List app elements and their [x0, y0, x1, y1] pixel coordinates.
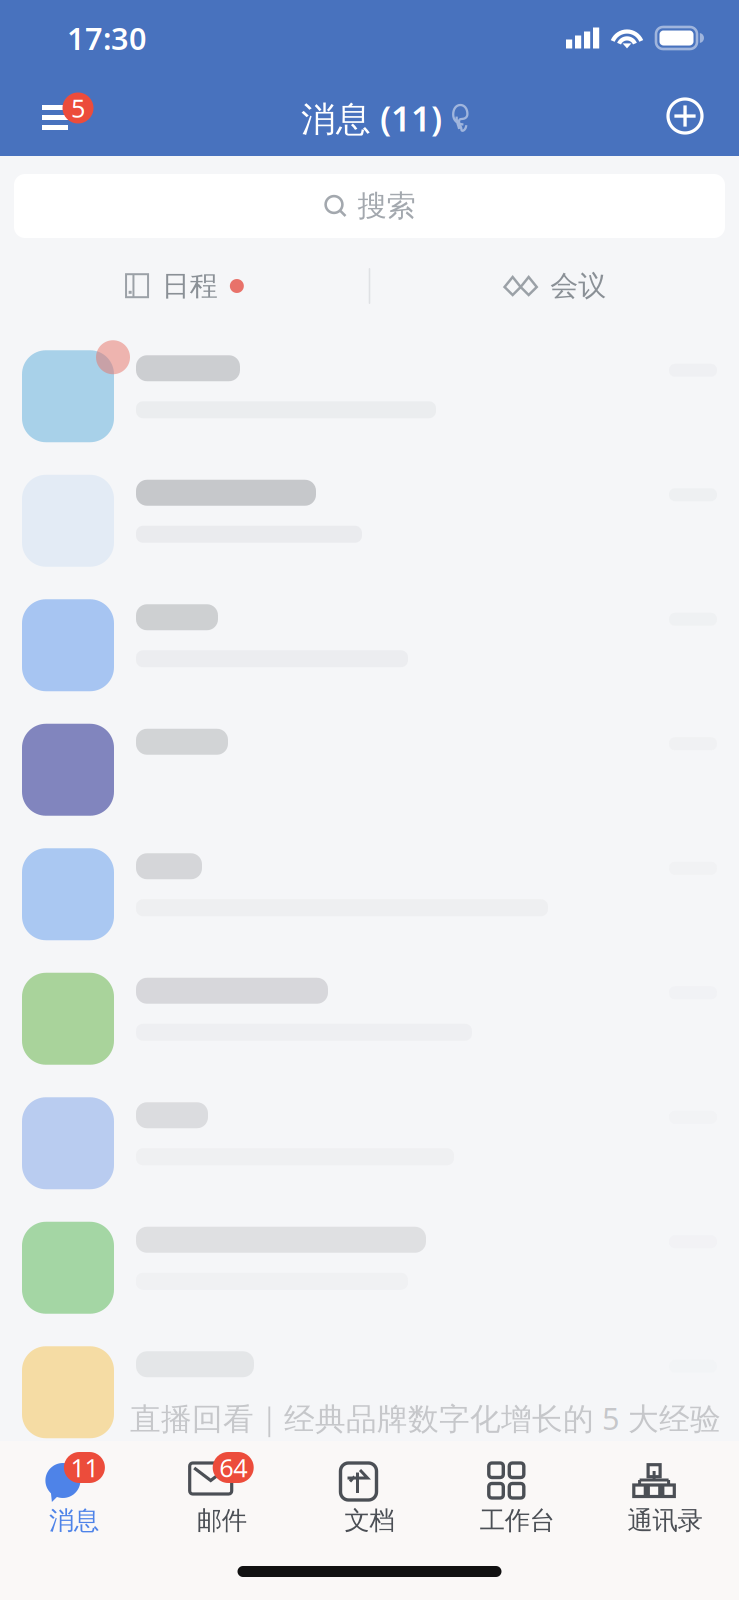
button[interactable] [0, 707, 739, 832]
button[interactable]: 日程 [0, 238, 369, 334]
button[interactable] [0, 1330, 739, 1454]
staticText: 工作台 [480, 1505, 555, 1536]
staticText: 消息 (11) [301, 95, 442, 141]
button[interactable]: 通讯录 [591, 1441, 739, 1542]
staticText: 64 [219, 1451, 247, 1484]
button[interactable] [0, 583, 739, 707]
staticText: 消息 [49, 1505, 99, 1536]
button[interactable]: 64 [148, 1441, 296, 1542]
button[interactable] [0, 334, 739, 458]
staticText: 搜索 [357, 188, 415, 224]
button[interactable]: 文档 [296, 1441, 443, 1542]
staticText: 文档 [344, 1505, 394, 1536]
staticText: 通讯录 [628, 1505, 703, 1536]
button[interactable] [0, 458, 739, 583]
staticText: 5 [71, 91, 85, 125]
button[interactable] [0, 832, 739, 956]
staticText: 日程 [162, 269, 218, 303]
staticText: 会议 [550, 269, 606, 303]
button[interactable]: 11 [0, 1441, 148, 1542]
button[interactable] [0, 1081, 739, 1205]
button[interactable]: 搜索 [14, 174, 725, 238]
button[interactable]: Menu [42, 92, 94, 139]
button[interactable] [0, 956, 739, 1081]
button[interactable]: 会议 [370, 238, 739, 334]
staticText: 11 [70, 1451, 98, 1484]
button[interactable]: New chat [666, 97, 704, 135]
staticText: 17:30 [67, 18, 147, 58]
button[interactable]: 工作台 [443, 1441, 591, 1542]
staticText: 直播回看｜经典品牌数字化增长的 5 大经验 [130, 1398, 721, 1438]
button[interactable] [0, 1205, 739, 1330]
staticText: 邮件 [197, 1505, 247, 1536]
